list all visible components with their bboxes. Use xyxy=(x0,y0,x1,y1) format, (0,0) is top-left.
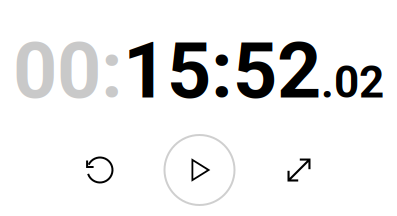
staticText: 00: xyxy=(13,26,123,116)
staticText: 15:52 xyxy=(123,26,321,116)
button[interactable]: Reset xyxy=(63,133,137,207)
button[interactable]: Start xyxy=(162,133,236,207)
button[interactable]: Lap xyxy=(262,133,336,207)
staticText: .02 xyxy=(321,57,384,108)
